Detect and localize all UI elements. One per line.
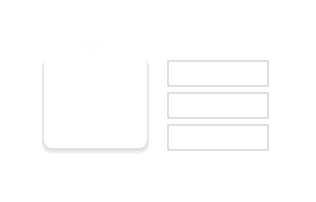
button[interactable]: Row — [168, 61, 268, 86]
button[interactable]: Card — [44, 57, 153, 154]
button[interactable]: Row — [168, 93, 268, 118]
button[interactable]: Row — [168, 125, 268, 150]
